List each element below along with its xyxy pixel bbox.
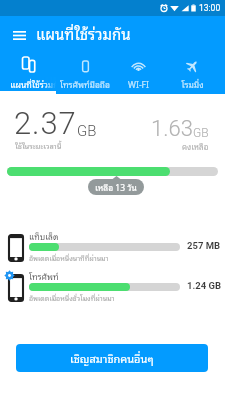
button[interactable]: แท็บเล็ต xyxy=(0,228,225,268)
button[interactable]: Open navigation menu xyxy=(6,22,32,48)
staticText: ใช้ในระยะเวลานี้ xyxy=(15,140,62,152)
staticText: 257 MB xyxy=(187,240,221,251)
staticText: 13:00 xyxy=(199,3,221,13)
button[interactable]: WI-FI xyxy=(114,56,162,94)
staticText: เหลือ 13 วัน xyxy=(95,180,137,194)
staticText: 2.37 xyxy=(14,105,77,141)
staticText: GB xyxy=(77,122,97,140)
staticText: โทรศัพท์ xyxy=(29,269,59,283)
staticText: WI-FI xyxy=(128,77,149,89)
staticText: 1.24 GB xyxy=(187,280,222,291)
button[interactable]: แผนที่ใช้ร่วมกัน xyxy=(0,56,56,94)
staticText: GB xyxy=(193,126,209,140)
staticText: แท็บเล็ต xyxy=(29,229,59,243)
staticText: 1.63 xyxy=(151,116,193,142)
staticText: แผนที่ใช้ร่วมกัน xyxy=(10,77,56,89)
staticText: เชิญสมาชิกคนอื่นๆ xyxy=(70,349,154,367)
staticText: อัพเดตเมื่อหนึ่งชั่วโมงที่ผ่านมา xyxy=(29,292,115,303)
staticText: โรมมิ่ง xyxy=(181,77,204,89)
staticText: โทรศัพท์มือถือ xyxy=(60,77,110,89)
button[interactable]: เชิญสมาชิกคนอื่นๆ xyxy=(16,344,208,372)
staticText: แผนที่ใช้ร่วมกัน xyxy=(36,21,131,45)
button[interactable]: โทรศัพท์ xyxy=(0,268,225,308)
staticText: คงเหลือ xyxy=(182,140,209,153)
button[interactable]: โทรศัพท์มือถือ xyxy=(56,56,114,94)
button[interactable]: โรมมิ่ง xyxy=(162,56,222,94)
staticText: อัพเดตเมื่อหนึ่งนาทีที่ผ่านมา xyxy=(29,252,109,263)
